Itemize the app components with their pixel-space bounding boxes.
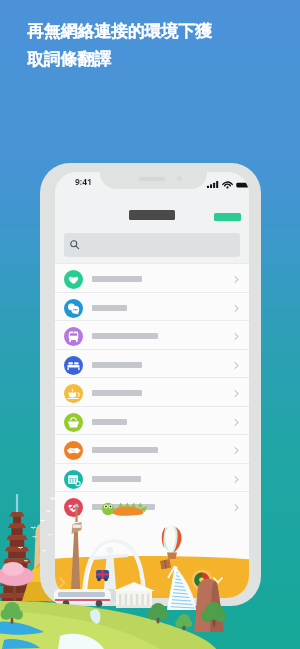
button[interactable] xyxy=(55,463,249,492)
button[interactable]: Action xyxy=(214,213,241,221)
button[interactable] xyxy=(55,377,249,406)
button[interactable]: Title xyxy=(129,210,175,220)
button[interactable] xyxy=(55,320,249,349)
button[interactable] xyxy=(55,349,249,378)
staticText: 9:41 xyxy=(75,176,92,188)
button[interactable] xyxy=(55,434,249,463)
button[interactable] xyxy=(55,263,249,292)
button[interactable] xyxy=(55,406,249,435)
staticText: 再無網絡連接的環境下獲 取詞條翻譯 xyxy=(27,21,279,70)
button[interactable] xyxy=(55,491,249,520)
button[interactable]: Search xyxy=(64,233,240,257)
button[interactable] xyxy=(55,292,249,321)
